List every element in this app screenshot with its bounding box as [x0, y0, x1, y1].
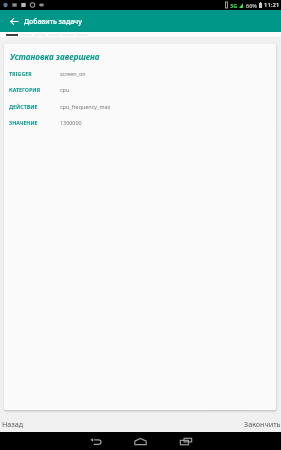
- staticText: 3G: [230, 2, 238, 9]
- staticText: ЗНАЧЕНИЕ: [9, 119, 60, 126]
- button[interactable]: Recents: [163, 432, 208, 450]
- staticText: Назад: [2, 419, 24, 429]
- button[interactable]: Назад: [0, 415, 26, 433]
- staticText: screen_on: [60, 70, 86, 77]
- staticText: ДЕЙСТВИЕ: [9, 103, 60, 110]
- staticText: КАТЕГОРИЯ: [9, 86, 60, 93]
- button[interactable]: Back: [73, 432, 118, 450]
- staticText: 1300000: [60, 119, 82, 126]
- staticText: 11:21: [264, 1, 280, 9]
- button[interactable]: Закончить: [244, 415, 281, 433]
- staticText: Закончить: [244, 419, 281, 429]
- staticText: TRIGGER: [9, 70, 60, 77]
- staticText: cpu: [60, 86, 70, 93]
- staticText: 66%: [246, 2, 257, 9]
- staticText: Добавить задачу: [24, 17, 82, 26]
- button[interactable]: Назад: [0, 10, 28, 32]
- button[interactable]: Home: [118, 432, 163, 450]
- staticText: cpu_frequency_max: [60, 103, 111, 110]
- staticText: Установка завершена: [10, 51, 100, 62]
